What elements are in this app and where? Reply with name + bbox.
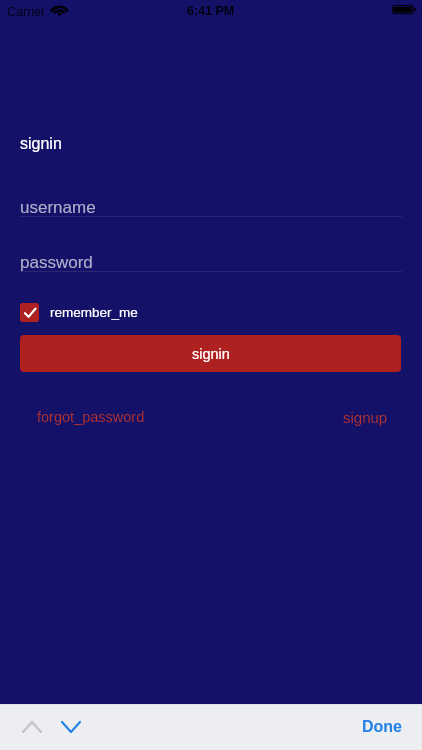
staticText: password [20, 253, 93, 272]
staticText: 6:41 PM [187, 4, 235, 18]
button[interactable]: signin [20, 335, 401, 372]
button[interactable]: password [20, 253, 402, 272]
other: Wi-Fi signal [51, 5, 68, 17]
other: Battery full [392, 5, 417, 16]
staticText: Done [362, 718, 402, 736]
button[interactable]: remember_me [20, 303, 138, 322]
staticText: Carrier [7, 5, 46, 19]
staticText: username [20, 198, 96, 217]
staticText: signin [20, 135, 62, 153]
button[interactable]: Done [354, 711, 410, 743]
button[interactable]: signup [343, 409, 388, 426]
button[interactable]: forgot_password [37, 409, 145, 425]
button[interactable]: Previous field [15, 714, 49, 740]
staticText: signin [192, 346, 230, 362]
button[interactable]: Next field [54, 714, 88, 740]
staticText: remember_me [50, 305, 138, 320]
button[interactable]: username [20, 198, 402, 217]
